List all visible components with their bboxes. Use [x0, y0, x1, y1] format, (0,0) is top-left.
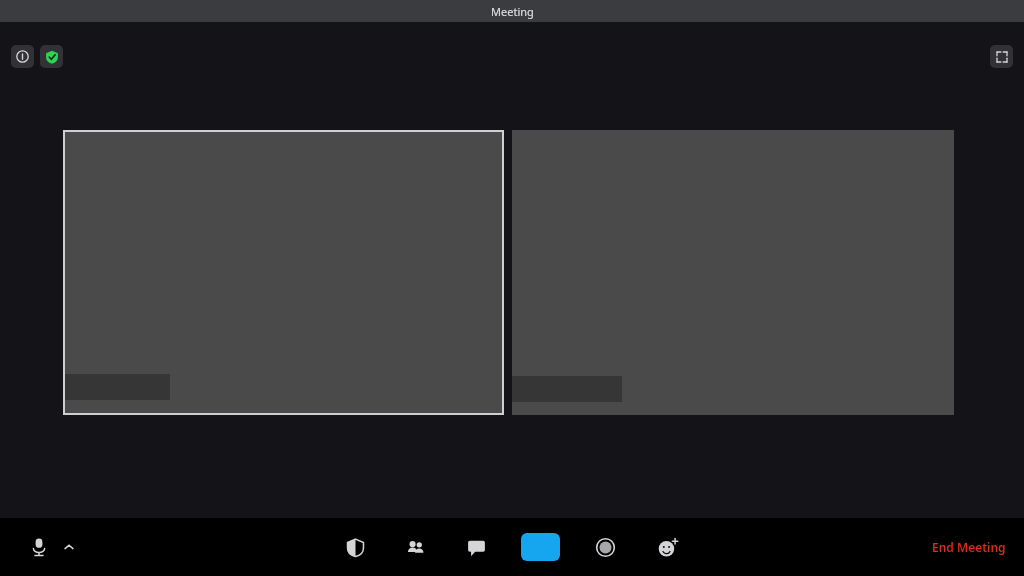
button[interactable]: Chat — [461, 532, 491, 562]
button[interactable]: Audio options — [58, 536, 80, 558]
button[interactable]: Enter full screen — [990, 45, 1013, 68]
button[interactable]: Security — [340, 532, 370, 562]
button[interactable]: Meeting information — [11, 45, 34, 68]
button[interactable]: End Meeting — [932, 539, 1006, 555]
button[interactable]: Record — [590, 532, 620, 562]
button[interactable]: Participants — [400, 532, 430, 562]
button[interactable]: Encryption status — [40, 45, 63, 68]
staticText: End Meeting — [932, 539, 1006, 555]
button[interactable]: Mute microphone — [22, 530, 56, 564]
staticText: Meeting — [491, 4, 534, 19]
button[interactable]: Share screen — [521, 533, 560, 561]
button[interactable]: Reactions — [652, 532, 682, 562]
